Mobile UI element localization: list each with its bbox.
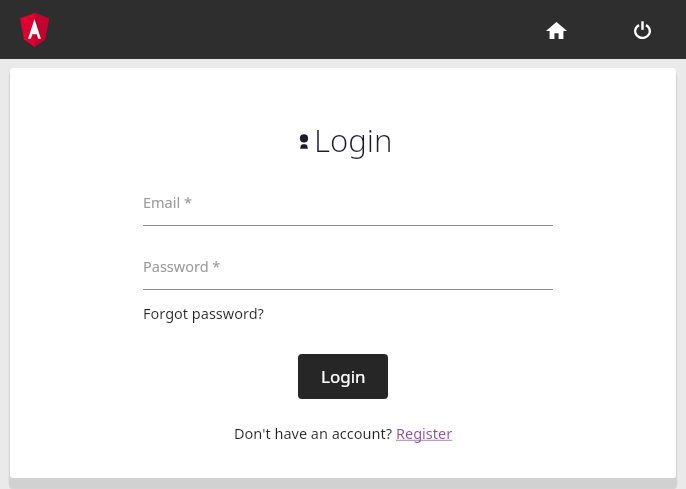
button[interactable]: Password * bbox=[143, 256, 553, 290]
button[interactable]: Home bbox=[534, 8, 578, 52]
staticText: Don't have an account? bbox=[234, 423, 396, 443]
staticText: Forgot password? bbox=[143, 303, 264, 323]
staticText: Password * bbox=[143, 256, 221, 276]
staticText: Login bbox=[321, 365, 366, 388]
button[interactable]: Register bbox=[396, 423, 453, 443]
button[interactable]: Login bbox=[298, 354, 388, 399]
button[interactable]: Email * bbox=[143, 192, 553, 226]
button[interactable]: Angular home bbox=[20, 13, 49, 47]
button[interactable]: Forgot password? bbox=[143, 303, 264, 323]
button[interactable]: Log out bbox=[620, 8, 664, 52]
staticText: Login bbox=[314, 119, 393, 161]
staticText: Register bbox=[396, 423, 453, 443]
staticText: Email * bbox=[143, 192, 192, 212]
